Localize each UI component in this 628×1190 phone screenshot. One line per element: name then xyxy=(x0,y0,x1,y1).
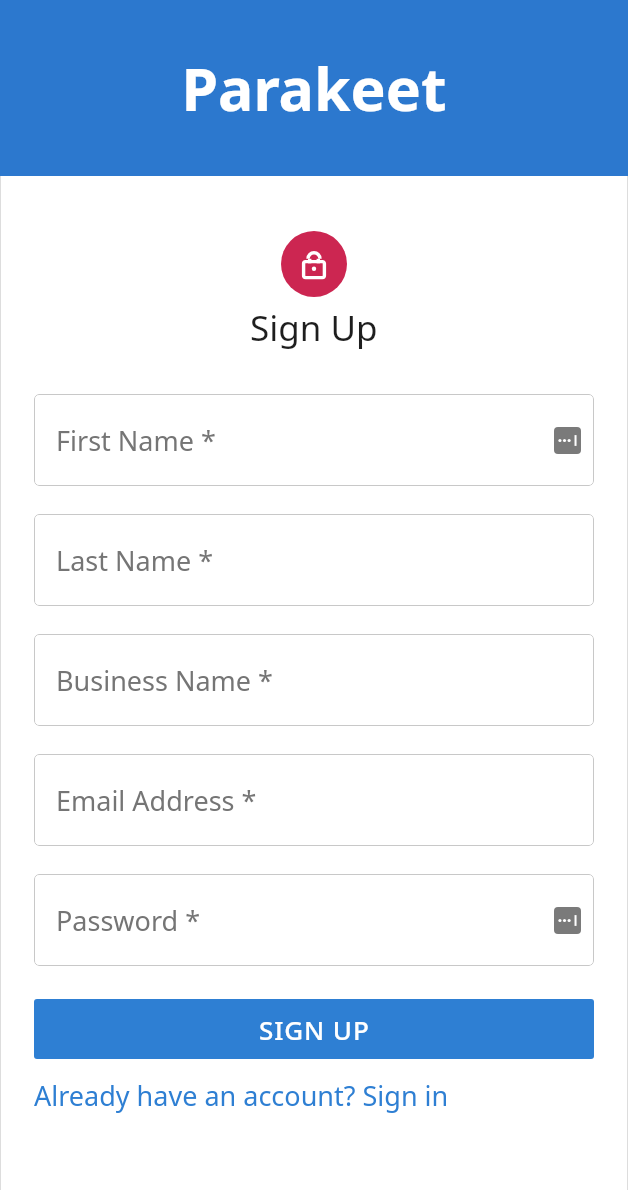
button[interactable]: First Name * xyxy=(34,394,594,486)
button[interactable]: Autofill xyxy=(554,907,581,934)
staticText: First Name * xyxy=(56,422,216,459)
button[interactable]: Last Name * xyxy=(34,514,594,606)
staticText: Last Name * xyxy=(56,542,214,579)
staticText: Already have an account? Sign in xyxy=(34,1077,449,1114)
staticText: Sign Up xyxy=(250,304,378,352)
button[interactable]: SIGN UP xyxy=(34,999,594,1059)
staticText: Business Name * xyxy=(56,662,273,699)
button[interactable]: Email Address * xyxy=(34,754,594,846)
staticText: SIGN UP xyxy=(259,1012,370,1047)
button[interactable]: Password * xyxy=(34,874,594,966)
button[interactable]: Already have an account? Sign in xyxy=(34,1077,594,1114)
button[interactable]: Business Name * xyxy=(34,634,594,726)
staticText: Parakeet xyxy=(181,48,447,128)
staticText: Email Address * xyxy=(56,782,257,819)
button[interactable]: Autofill xyxy=(554,427,581,454)
staticText: Password * xyxy=(56,902,201,939)
